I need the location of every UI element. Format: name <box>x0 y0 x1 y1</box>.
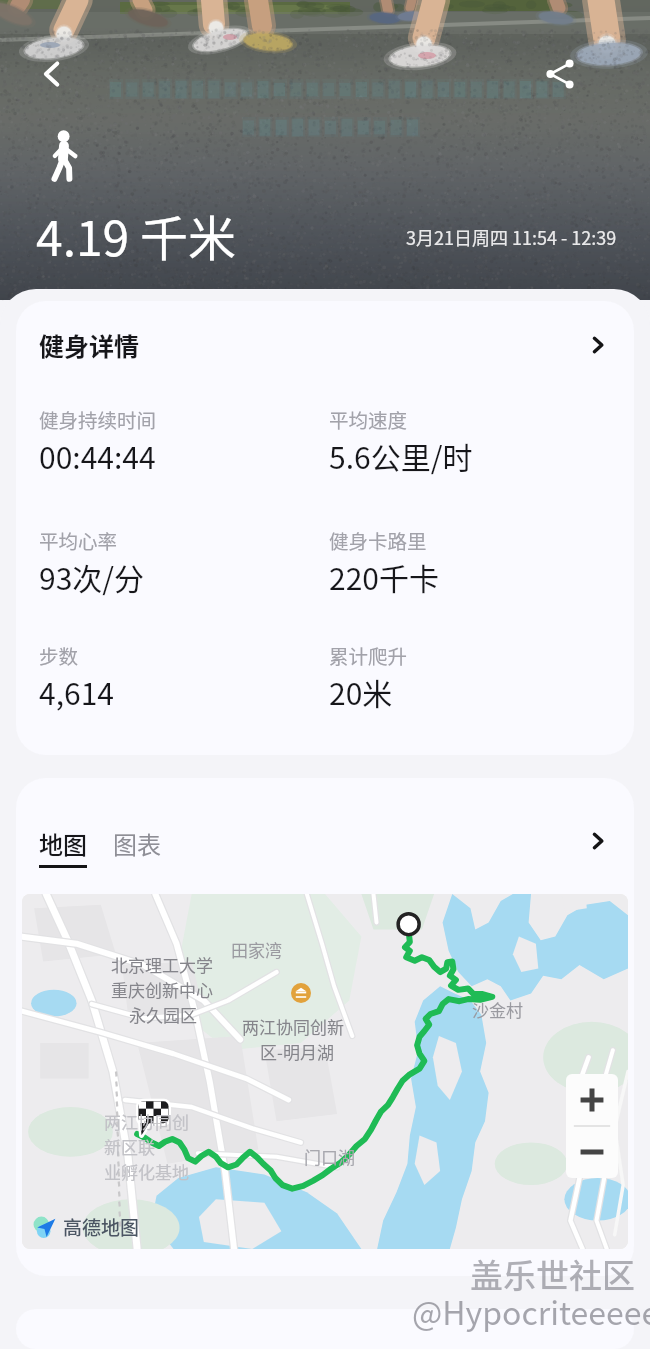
button[interactable]: 地图 <box>39 826 87 868</box>
staticText: 健身持续时间 <box>39 405 157 433</box>
staticText: 00:44:44 <box>39 434 156 477</box>
staticText: 93次/分 <box>39 555 145 598</box>
staticText: @Hypocriteeeee <box>412 1288 650 1334</box>
staticText: 220千卡 <box>329 555 439 598</box>
staticText: 健身卡路里 <box>329 526 427 554</box>
staticText: 平均心率 <box>39 526 118 554</box>
staticText: 北京理工大学 <box>111 952 213 977</box>
staticText: 沙金村 <box>472 997 523 1022</box>
staticText: 门口湖 <box>304 1144 355 1169</box>
button[interactable]: Map <box>22 894 628 1249</box>
staticText: 地图 <box>39 826 87 861</box>
button[interactable]: 健身详情 <box>16 301 634 755</box>
staticText: 健身详情 <box>39 327 140 363</box>
staticText: 4.19 千米 <box>36 200 237 270</box>
staticText: 田家湾 <box>231 937 282 962</box>
staticText: 4,614 <box>39 670 114 713</box>
staticText: 两江协同创 <box>104 1109 189 1134</box>
staticText: 盖乐世社区 <box>470 1250 635 1298</box>
staticText: 业孵化基地 <box>104 1159 189 1184</box>
staticText: 永久园区 <box>129 1002 197 1027</box>
staticText: 平均速度 <box>329 405 408 433</box>
staticText: 5.6公里/时 <box>329 434 473 477</box>
button[interactable]: Share <box>540 54 580 94</box>
staticText: 高德地图 <box>63 1213 140 1241</box>
staticText: 20米 <box>329 670 393 713</box>
staticText: 累计爬升 <box>329 641 408 669</box>
staticText: 步数 <box>39 641 79 669</box>
staticText: 区-明月湖 <box>260 1039 334 1064</box>
button[interactable]: 图表 <box>113 826 161 861</box>
staticText: 两江协同创新 <box>242 1014 344 1039</box>
staticText: 3月21日周四 11:54 - 12:39 <box>406 224 617 250</box>
button[interactable]: Back <box>30 52 74 96</box>
staticText: 新区联 <box>104 1134 155 1159</box>
staticText: 重庆创新中心 <box>111 977 213 1002</box>
